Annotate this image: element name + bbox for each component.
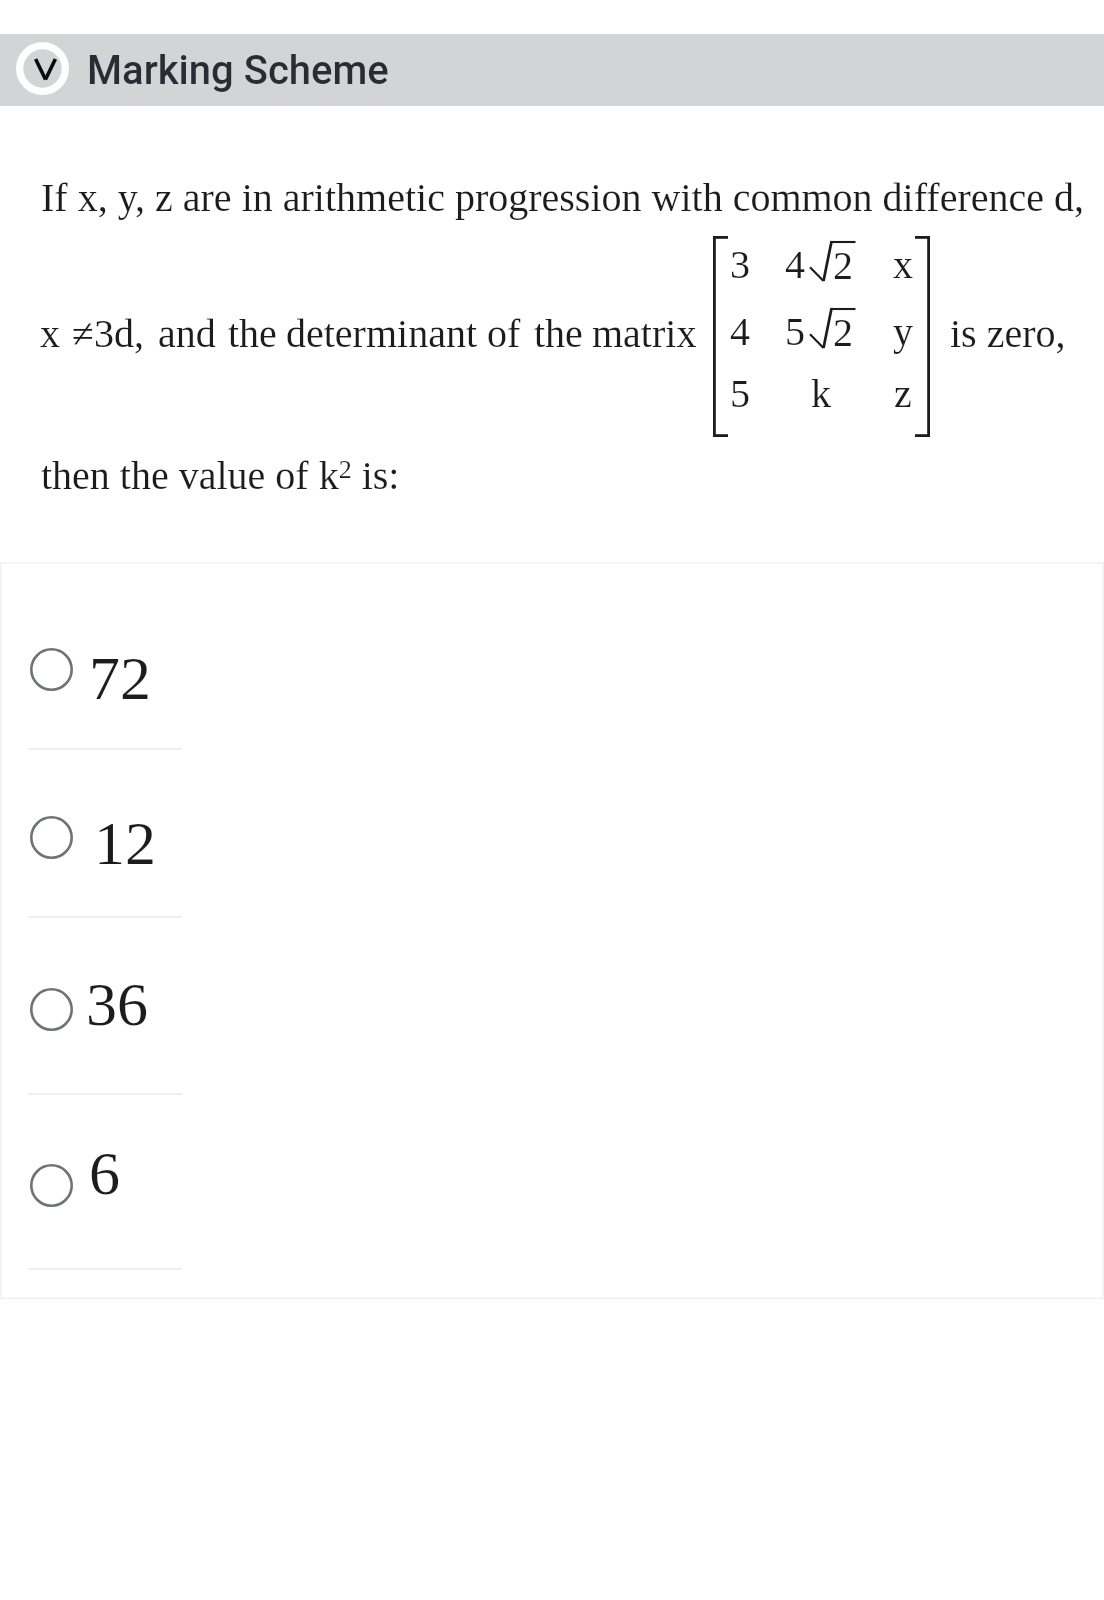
staticText: the — [534, 311, 583, 355]
staticText: 12 — [94, 809, 156, 878]
staticText: 2 — [833, 310, 853, 354]
staticText: matrix — [592, 311, 697, 355]
staticText: y — [893, 309, 913, 353]
staticText: 4 — [785, 242, 805, 286]
staticText: Marking Scheme — [87, 47, 389, 94]
staticText: 3 — [730, 242, 750, 286]
button[interactable]: 6 — [0, 1096, 1104, 1271]
staticText: determinant — [286, 311, 478, 355]
button[interactable]: Collapse marking scheme — [16, 42, 69, 95]
staticText: is zero, — [950, 311, 1066, 355]
button[interactable]: Collapse marking scheme — [0, 34, 1104, 106]
staticText: x — [40, 311, 60, 355]
staticText: 6 — [89, 1139, 120, 1208]
staticText: of — [487, 311, 521, 355]
staticText: x — [893, 242, 913, 286]
staticText: the — [228, 311, 277, 355]
button[interactable]: 36 — [0, 919, 1104, 1096]
staticText: 72 — [89, 644, 151, 713]
staticText: 36 — [86, 970, 148, 1039]
staticText: ≠3d, — [72, 311, 144, 355]
staticText: If x, y, z are in arithmetic progression… — [41, 175, 1084, 219]
staticText: and — [158, 311, 216, 355]
staticText: 2 — [833, 243, 853, 287]
button[interactable]: 12 — [0, 751, 1104, 919]
button[interactable]: 72 — [0, 563, 1104, 751]
staticText: 5 — [730, 371, 750, 415]
staticText: k — [811, 371, 831, 415]
staticText: then the value of k2 is: — [41, 453, 400, 497]
staticText: 5 — [785, 309, 805, 353]
staticText: z — [894, 371, 912, 415]
staticText: 4 — [730, 309, 750, 353]
